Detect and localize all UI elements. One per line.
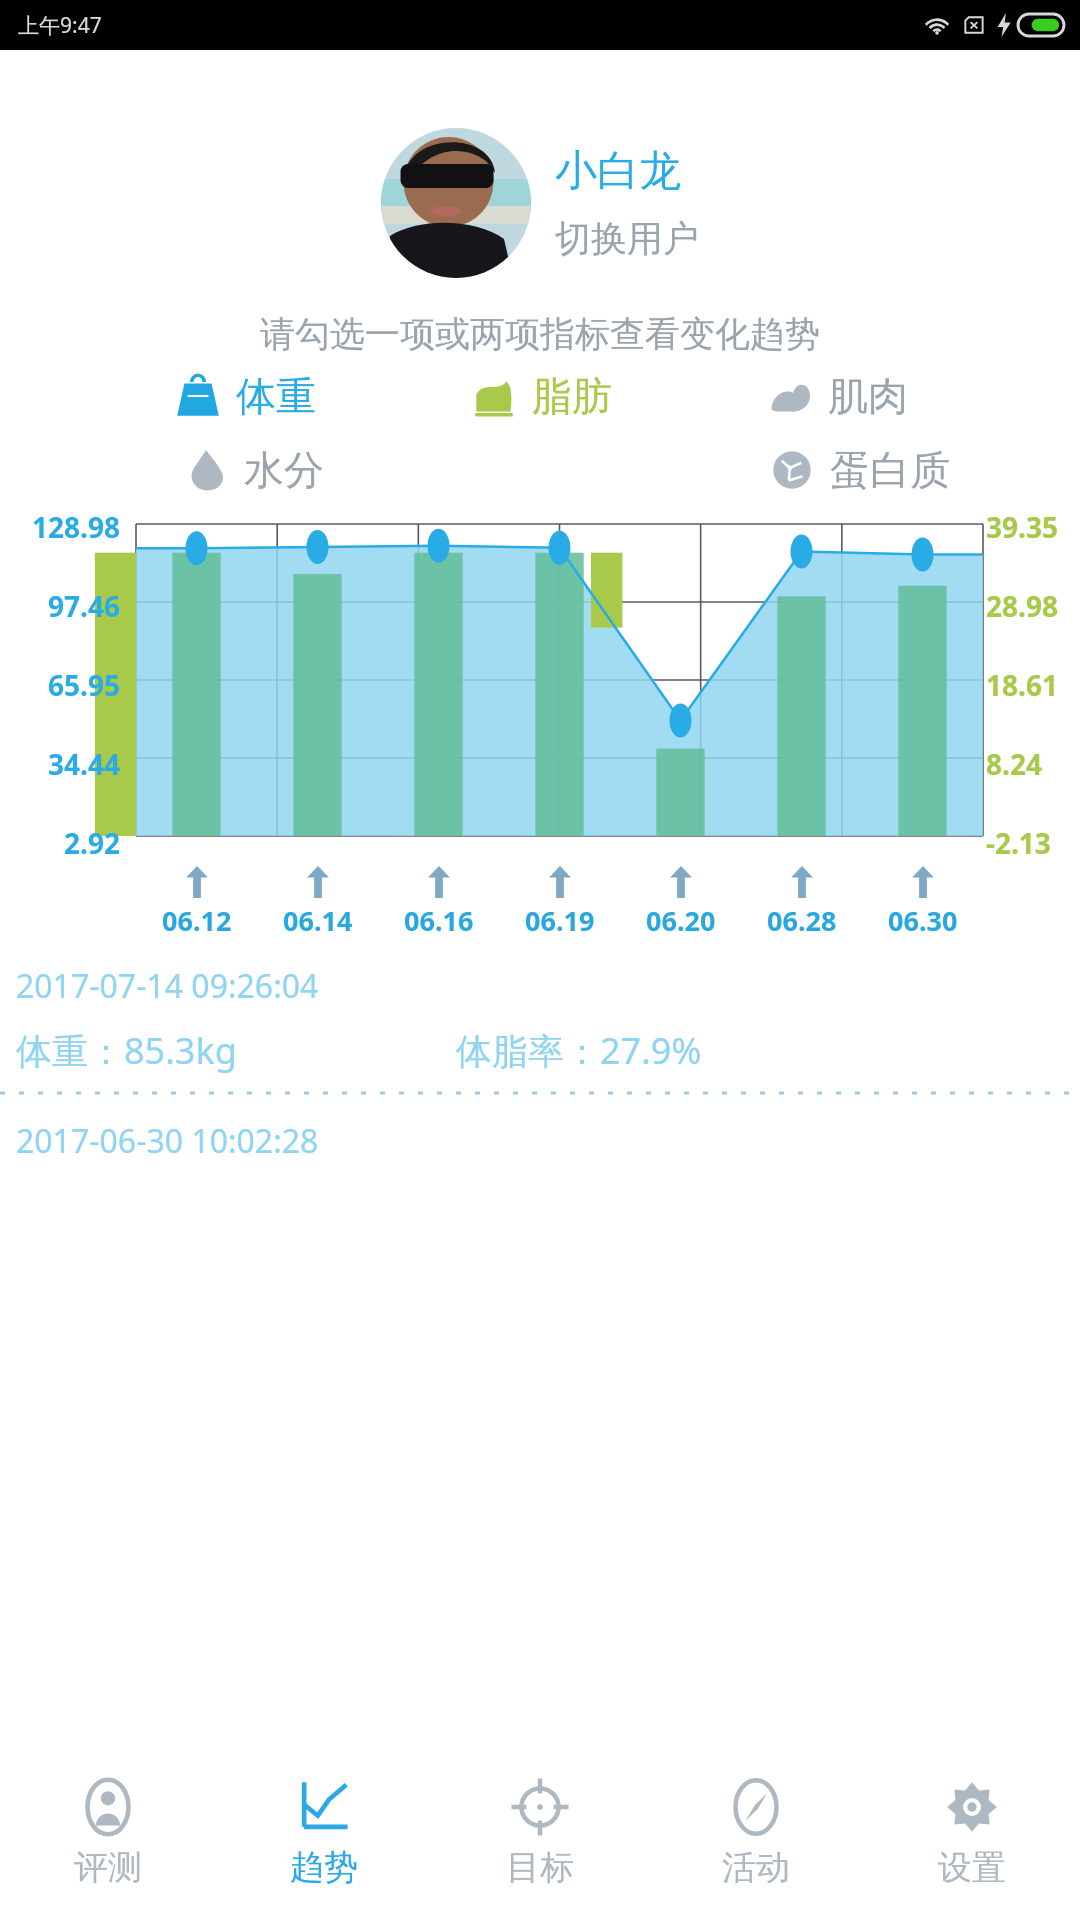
- staticText: 肌肉: [828, 371, 908, 421]
- staticText: 小白龙: [555, 145, 681, 198]
- staticText: 体重：85.3kg: [16, 1026, 456, 1075]
- staticText: 06.28: [767, 902, 837, 939]
- staticText: 切换用户: [555, 216, 699, 261]
- staticText: 2017-06-30 10:02:28: [16, 1119, 319, 1163]
- staticText: 水分: [244, 445, 324, 495]
- staticText: 28.98: [986, 587, 1080, 625]
- button[interactable]: 06.28: [741, 866, 862, 946]
- staticText: 蛋白质: [830, 445, 950, 495]
- button[interactable]: 06.19: [499, 866, 620, 946]
- staticText: 06.14: [283, 902, 353, 939]
- staticText: 06.19: [525, 902, 595, 939]
- staticText: 请勾选一项或两项指标查看变化趋势: [0, 312, 1080, 356]
- staticText: 128.98: [0, 508, 120, 546]
- staticText: 2.92: [0, 824, 120, 862]
- staticText: -2.13: [986, 824, 1080, 862]
- button[interactable]: 设置: [864, 1760, 1080, 1920]
- button[interactable]: 2017-07-14 09:26:04: [0, 958, 1080, 1083]
- staticText: 18.61: [986, 666, 1080, 704]
- staticText: 目标: [506, 1846, 574, 1889]
- staticText: 2017-07-14 09:26:04: [16, 964, 319, 1008]
- staticText: 脂肪: [532, 371, 612, 421]
- button[interactable]: 06.30: [862, 866, 983, 946]
- staticText: 上午9:47: [18, 11, 102, 40]
- button[interactable]: 目标: [432, 1760, 648, 1920]
- button[interactable]: 06.12: [136, 866, 257, 946]
- button[interactable]: 脂肪: [468, 370, 612, 422]
- button[interactable]: 蛋白质: [766, 444, 950, 496]
- staticText: 活动: [722, 1846, 790, 1889]
- staticText: 65.95: [0, 666, 120, 704]
- staticText: 06.30: [888, 902, 958, 939]
- button[interactable]: 2017-06-30 10:02:28: [0, 1103, 1080, 1163]
- staticText: 趋势: [290, 1846, 358, 1889]
- button[interactable]: 活动: [648, 1760, 864, 1920]
- staticText: 设置: [938, 1846, 1006, 1889]
- button[interactable]: 06.16: [378, 866, 499, 946]
- button[interactable]: 小白龙: [0, 128, 1080, 278]
- button[interactable]: 肌肉: [764, 370, 908, 422]
- button[interactable]: 趋势: [216, 1760, 432, 1920]
- staticText: 8.24: [986, 745, 1080, 783]
- button[interactable]: 评测: [0, 1760, 216, 1920]
- button[interactable]: 06.14: [257, 866, 378, 946]
- staticText: 06.20: [646, 902, 716, 939]
- staticText: 39.35: [986, 508, 1080, 546]
- staticText: 06.12: [162, 902, 232, 939]
- staticText: 34.44: [0, 745, 120, 783]
- button[interactable]: 06.20: [620, 866, 741, 946]
- button[interactable]: 体重: [172, 370, 316, 422]
- staticText: 体重: [236, 371, 316, 421]
- staticText: 06.16: [404, 902, 474, 939]
- button[interactable]: 水分: [180, 444, 324, 496]
- staticText: 评测: [74, 1846, 142, 1889]
- staticText: 97.46: [0, 587, 120, 625]
- staticText: 体脂率：27.9%: [456, 1026, 702, 1075]
